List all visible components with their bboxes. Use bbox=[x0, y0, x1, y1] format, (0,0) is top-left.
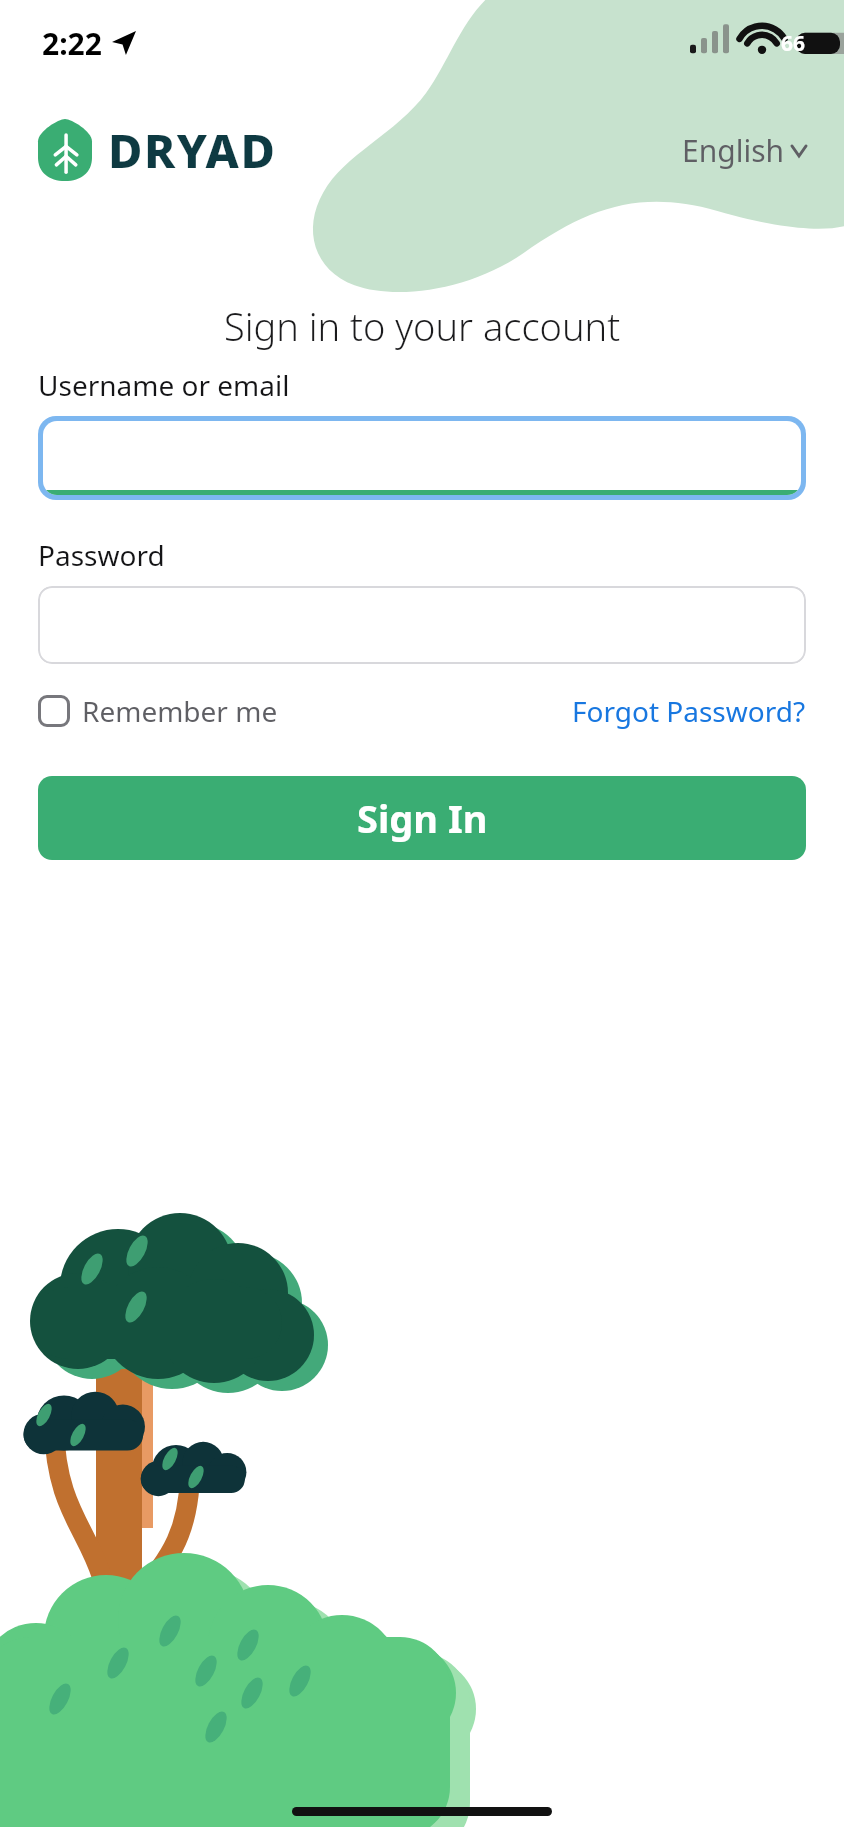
staticText: Remember me bbox=[82, 692, 278, 730]
button[interactable]: Remember me bbox=[38, 692, 278, 730]
button[interactable]: Forgot Password? bbox=[572, 692, 806, 730]
button[interactable]: DRYAD bbox=[38, 118, 277, 182]
staticText: Sign In bbox=[357, 792, 488, 844]
staticText: Password bbox=[38, 536, 165, 574]
staticText: 66 bbox=[781, 29, 806, 58]
button[interactable]: English bbox=[682, 130, 806, 171]
staticText: Sign in to your account bbox=[0, 300, 844, 352]
button[interactable] bbox=[38, 586, 806, 664]
button[interactable] bbox=[38, 416, 806, 500]
staticText: Username or email bbox=[38, 366, 290, 404]
button[interactable]: Sign In bbox=[38, 776, 806, 860]
staticText: DRYAD bbox=[108, 118, 277, 182]
staticText: 2:22 bbox=[42, 23, 102, 64]
staticText: English bbox=[682, 130, 785, 171]
